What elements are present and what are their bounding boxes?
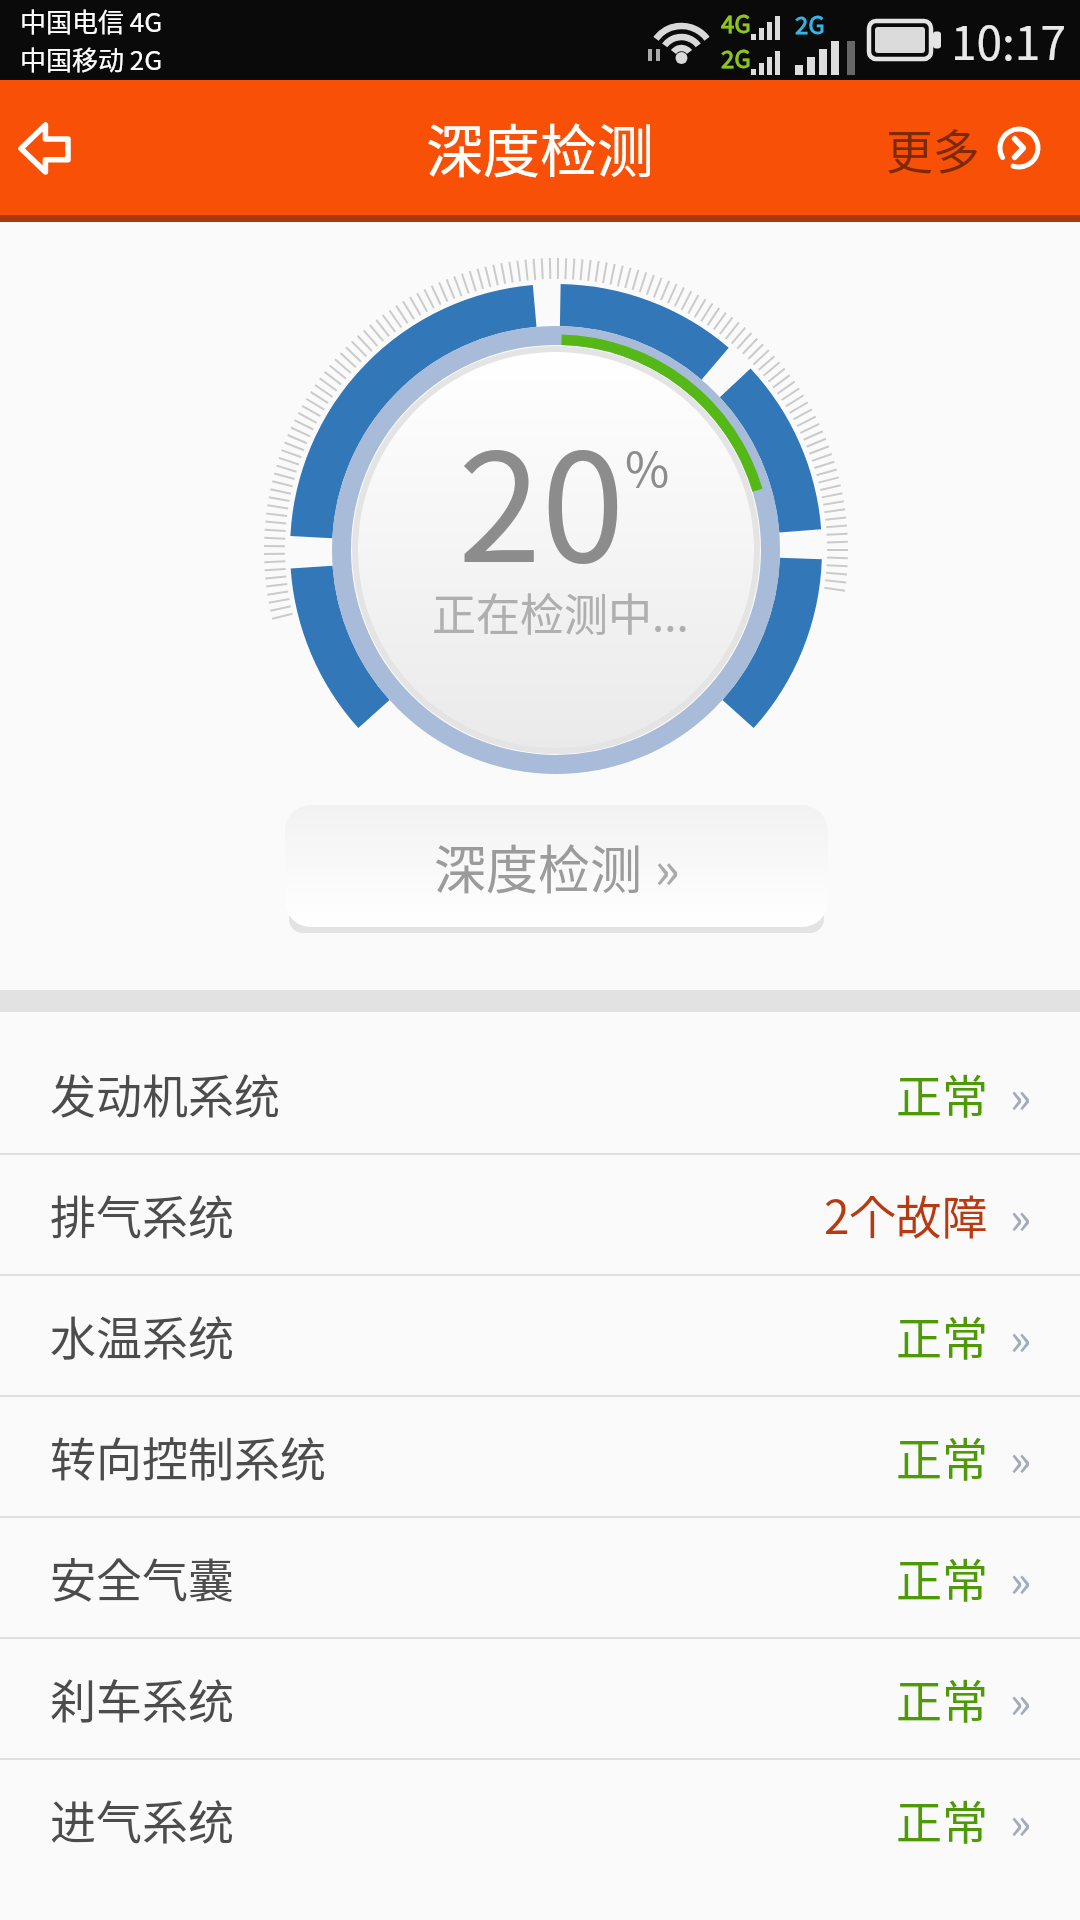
staticText: 正常 <box>896 1423 988 1490</box>
staticText: 正常 <box>896 1302 988 1369</box>
staticText: » <box>643 829 680 904</box>
staticText: 深度检测 <box>426 106 654 189</box>
staticText: 2G <box>721 40 751 75</box>
button[interactable]: 深度检测 <box>285 805 828 927</box>
staticText: 中国移动 2G <box>20 40 163 78</box>
button[interactable]: 刹车系统 <box>0 1639 1080 1758</box>
staticText: 排气系统 <box>50 1181 234 1248</box>
staticText: 2个故障 <box>824 1181 988 1248</box>
staticText: 正常 <box>896 1544 988 1611</box>
staticText: 发动机系统 <box>50 1060 280 1127</box>
staticText: » <box>1010 1546 1032 1610</box>
button[interactable]: 发动机系统 <box>0 1034 1080 1153</box>
staticText: » <box>1010 1062 1032 1126</box>
button[interactable]: 安全气囊 <box>0 1518 1080 1637</box>
button[interactable]: 水温系统 <box>0 1276 1080 1395</box>
button[interactable] <box>6 110 82 186</box>
staticText: 水温系统 <box>50 1302 234 1369</box>
staticText: 正常 <box>896 1786 988 1853</box>
button[interactable]: 排气系统 <box>0 1155 1080 1274</box>
staticText: » <box>1010 1183 1032 1247</box>
button[interactable]: 更多 <box>886 114 1041 182</box>
staticText: 更多 <box>886 114 980 182</box>
staticText: 进气系统 <box>50 1786 234 1853</box>
staticText: 中国电信 4G <box>20 2 163 40</box>
staticText: » <box>1010 1788 1032 1852</box>
staticText: 4G <box>721 5 751 40</box>
staticText: 10:17 <box>951 7 1066 74</box>
staticText: 深度检测 <box>434 829 643 904</box>
staticText: 安全气囊 <box>50 1544 234 1611</box>
staticText: » <box>1010 1667 1032 1731</box>
staticText: 正常 <box>896 1665 988 1732</box>
staticText: % <box>625 431 670 501</box>
button[interactable]: 进气系统 <box>0 1760 1080 1879</box>
staticText: 2G <box>795 6 825 41</box>
staticText: 转向控制系统 <box>50 1423 326 1490</box>
staticText: » <box>1010 1304 1032 1368</box>
staticText: » <box>1010 1425 1032 1489</box>
staticText: 刹车系统 <box>50 1665 234 1732</box>
staticText: 20 <box>458 388 625 605</box>
button[interactable]: 转向控制系统 <box>0 1397 1080 1516</box>
staticText: 正常 <box>896 1060 988 1127</box>
staticText: 正在检测中... <box>432 580 689 644</box>
